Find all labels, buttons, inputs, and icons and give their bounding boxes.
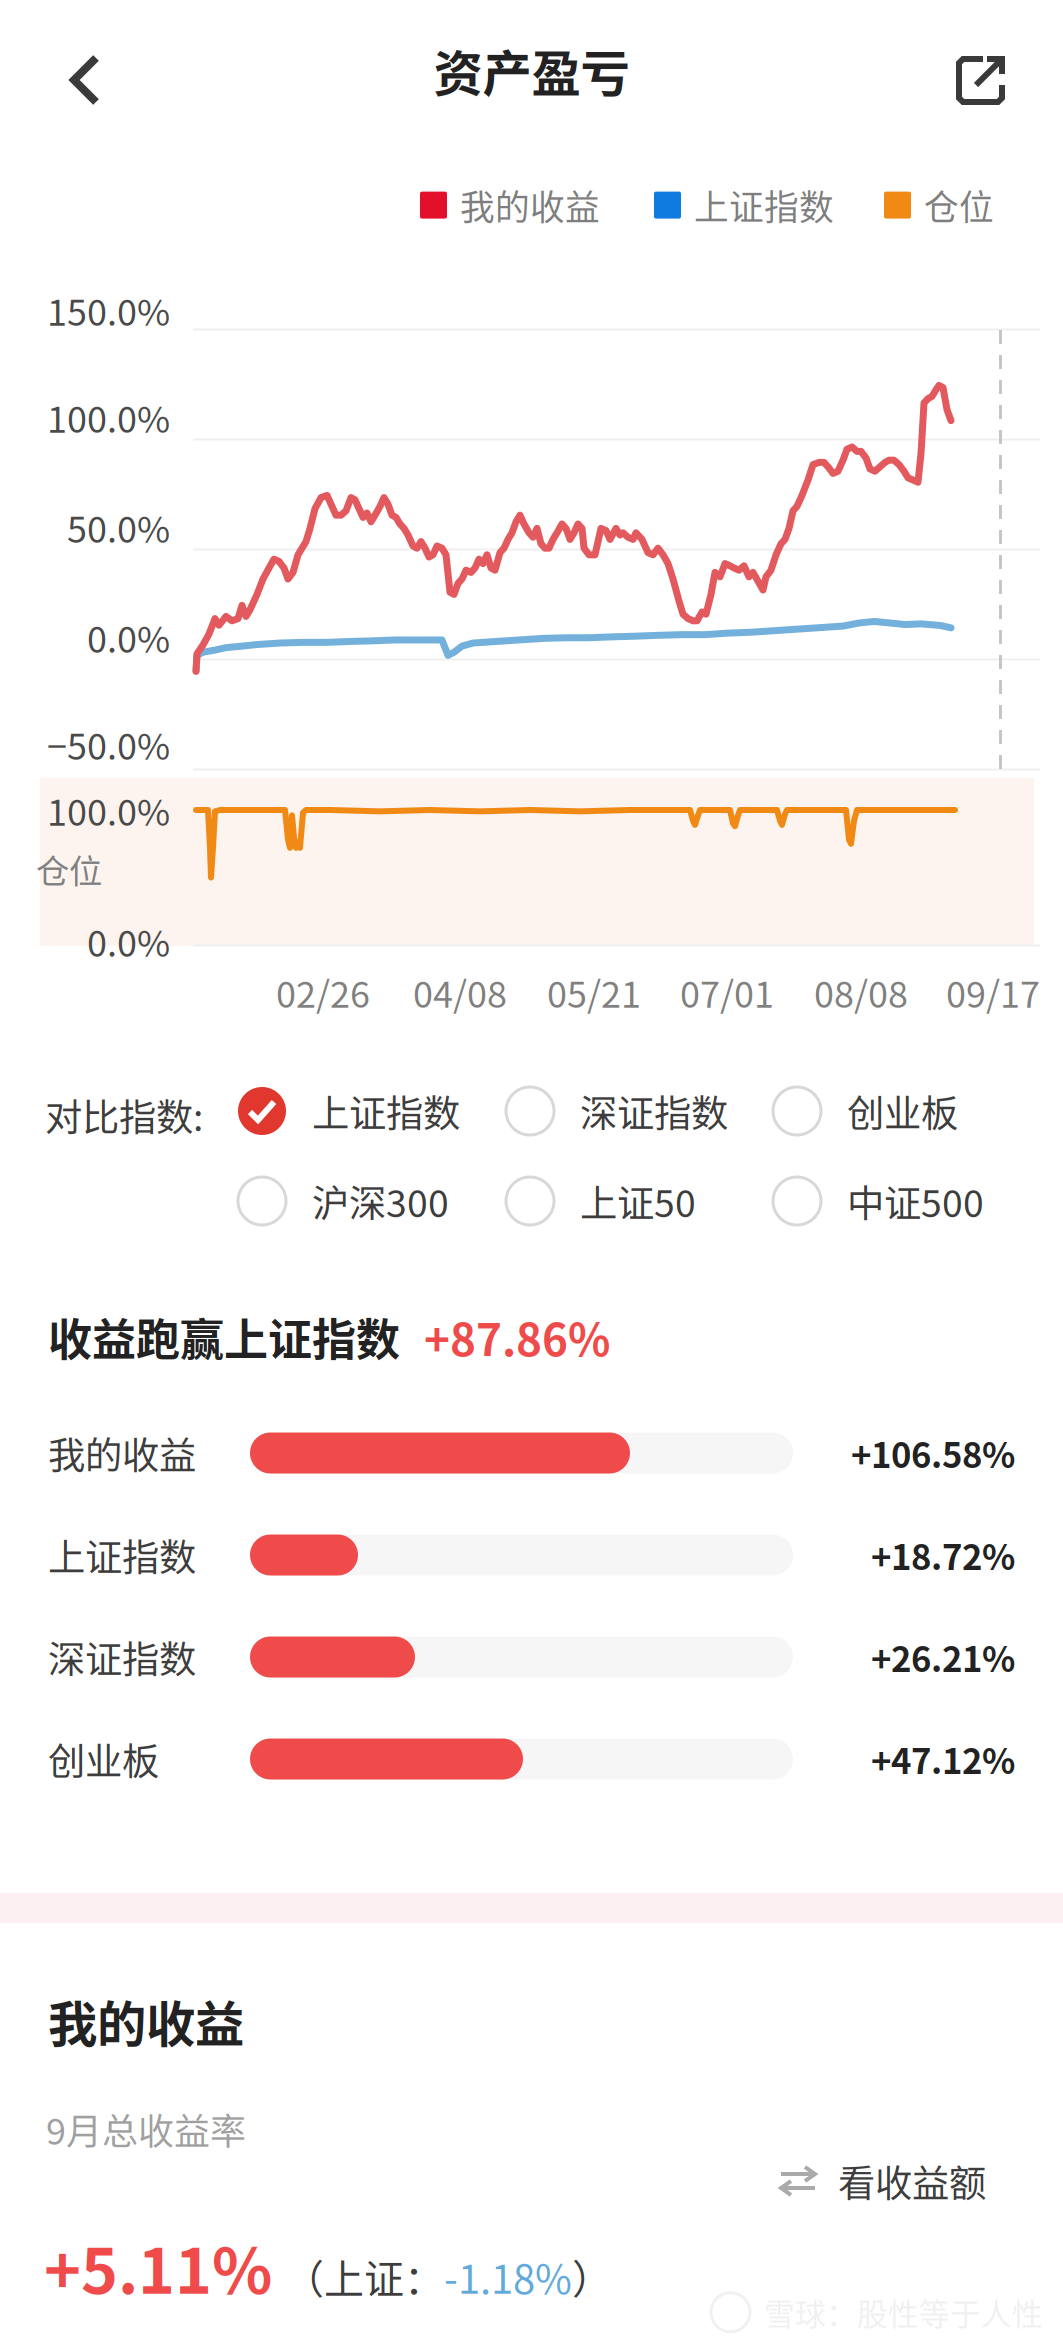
button[interactable]: Share <box>926 26 1035 135</box>
staticText: 我的收益 <box>460 180 600 230</box>
staticText: +87.86% <box>424 1305 610 1369</box>
staticText: 07/01 <box>680 966 774 1018</box>
staticText: 中证500 <box>847 1174 984 1228</box>
staticText: 05/21 <box>547 966 641 1018</box>
button[interactable]: 上证50 <box>506 1161 696 1241</box>
staticText: 创业板 <box>48 1732 159 1786</box>
staticText: 08/08 <box>814 966 908 1018</box>
staticText: （上证： <box>284 2247 444 2305</box>
button[interactable]: 中证500 <box>773 1161 984 1241</box>
button[interactable]: 上证指数 <box>238 1071 460 1151</box>
staticText: 仓位 <box>36 845 102 893</box>
staticText: 100.0% <box>47 784 170 836</box>
staticText: 我的收益 <box>48 1426 196 1480</box>
staticText: 上证指数 <box>694 180 834 230</box>
staticText: 0.0% <box>87 915 170 967</box>
button[interactable]: 深证指数 <box>506 1071 728 1151</box>
staticText: 50.0% <box>67 501 170 553</box>
staticText: 0.0% <box>87 611 170 663</box>
staticText: 对比指数: <box>45 1088 203 1142</box>
staticText: 创业板 <box>847 1084 958 1138</box>
staticText: 资产盈亏 <box>433 34 629 106</box>
staticText: ） <box>572 2247 612 2305</box>
staticText: 9月总收益率 <box>46 2103 246 2155</box>
staticText: 深证指数 <box>48 1630 196 1684</box>
staticText: 04/08 <box>413 966 507 1018</box>
staticText: 上证指数 <box>312 1084 460 1138</box>
staticText: 上证50 <box>580 1174 696 1228</box>
staticText: 150.0% <box>47 284 170 336</box>
staticText: 02/26 <box>276 966 370 1018</box>
button[interactable]: Back <box>39 24 131 138</box>
staticText: +47.12% <box>871 1734 1015 1784</box>
button[interactable]: 看收益额 <box>762 2138 1002 2224</box>
staticText: 看收益额 <box>838 2154 986 2208</box>
staticText: 100.0% <box>47 391 170 443</box>
staticText: 沪深300 <box>312 1174 449 1228</box>
button[interactable]: 沪深300 <box>238 1161 449 1241</box>
staticText: 深证指数 <box>580 1084 728 1138</box>
staticText: +18.72% <box>871 1530 1015 1580</box>
staticText: 我的收益 <box>48 1985 244 2056</box>
staticText: +26.21% <box>871 1632 1015 1682</box>
staticText: +106.58% <box>851 1428 1015 1478</box>
staticText: 雪球：股性等于人性 <box>764 2290 1043 2334</box>
staticText: 仓位 <box>924 180 994 230</box>
staticText: −50.0% <box>47 718 170 770</box>
staticText: 上证指数 <box>48 1528 196 1582</box>
staticText: 收益跑赢上证指数 <box>48 1305 400 1369</box>
staticText: -1.18% <box>444 2247 572 2305</box>
button[interactable]: 创业板 <box>773 1071 958 1151</box>
staticText: 09/17 <box>946 966 1040 1018</box>
staticText: +5.11% <box>44 2221 272 2312</box>
